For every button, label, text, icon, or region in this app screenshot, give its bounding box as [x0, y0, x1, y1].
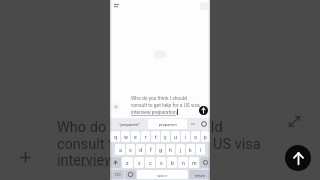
- staticText: “preparent”: [119, 122, 140, 127]
- button[interactable]: l: [196, 144, 205, 155]
- staticText: r: [145, 134, 147, 140]
- staticText: return: [195, 173, 205, 177]
- staticText: u: [174, 134, 177, 140]
- staticText: w: [124, 134, 128, 140]
- staticText: d: [139, 147, 142, 153]
- staticText: t: [155, 134, 157, 140]
- staticText: b: [171, 160, 174, 166]
- button[interactable]: Settings: [198, 118, 210, 130]
- staticText: Who do you think I should consult to get…: [57, 119, 261, 168]
- staticText: m: [192, 160, 197, 166]
- staticText: f: [150, 147, 152, 153]
- button[interactable]: j: [176, 144, 185, 155]
- button[interactable]: z: [122, 157, 133, 168]
- button[interactable]: f: [146, 144, 155, 155]
- staticText: k: [189, 147, 192, 153]
- button[interactable]: Shift: [110, 157, 121, 168]
- button[interactable]: n: [178, 157, 188, 168]
- button[interactable]: Add: [16, 148, 34, 166]
- staticText: e: [134, 134, 137, 140]
- staticText: v: [160, 160, 163, 166]
- button[interactable]: Backspace: [200, 157, 210, 168]
- button[interactable]: p: [201, 131, 210, 142]
- button[interactable]: 123: [110, 170, 124, 179]
- button[interactable]: Send message: [199, 106, 208, 115]
- staticText: i: [185, 134, 187, 140]
- staticText: s: [129, 147, 132, 153]
- button[interactable]: b: [167, 157, 177, 168]
- staticText: j: [180, 147, 182, 153]
- button[interactable]: i: [181, 131, 190, 142]
- staticText: a: [119, 147, 122, 153]
- button[interactable]: g: [156, 144, 165, 155]
- button[interactable]: Scroll to top: [285, 145, 311, 171]
- button[interactable]: en: [187, 118, 198, 130]
- button[interactable]: return: [189, 170, 210, 179]
- staticText: h: [169, 147, 172, 153]
- button[interactable]: o: [191, 131, 200, 142]
- button[interactable]: Menu: [112, 1, 121, 10]
- button[interactable]: e: [131, 131, 140, 142]
- staticText: p: [204, 134, 207, 140]
- button[interactable]: q: [110, 131, 120, 142]
- button[interactable]: Expand: [286, 113, 302, 129]
- button[interactable]: m: [189, 157, 199, 168]
- staticText: x: [138, 160, 141, 166]
- staticText: c: [149, 160, 152, 166]
- staticText: en: [191, 122, 195, 126]
- button[interactable]: y: [161, 131, 170, 142]
- button[interactable]: Space: [137, 170, 188, 179]
- staticText: o: [194, 134, 197, 140]
- staticText: 123: [114, 172, 121, 177]
- button[interactable]: t: [151, 131, 160, 142]
- button[interactable]: preparem: [148, 119, 187, 129]
- button[interactable]: Emoji: [125, 170, 136, 179]
- staticText: z: [126, 160, 129, 166]
- button[interactable]: h: [166, 144, 175, 155]
- staticText: g: [159, 147, 162, 153]
- button[interactable]: a: [115, 144, 125, 155]
- button[interactable]: r: [141, 131, 150, 142]
- staticText: l: [200, 147, 202, 153]
- staticText: space: [157, 173, 168, 177]
- staticText: preparem: [159, 122, 177, 127]
- staticText: q: [114, 134, 117, 140]
- button[interactable]: k: [186, 144, 195, 155]
- button[interactable]: w: [121, 131, 130, 142]
- staticText: Who do you think I should consult to get…: [131, 95, 200, 115]
- staticText: n: [182, 160, 185, 166]
- button[interactable]: v: [156, 157, 166, 168]
- button[interactable]: x: [134, 157, 144, 168]
- button[interactable]: d: [136, 144, 145, 155]
- button[interactable]: “preparent”: [110, 118, 148, 130]
- button[interactable]: s: [126, 144, 135, 155]
- button[interactable]: Attach: [111, 102, 121, 112]
- button[interactable]: u: [171, 131, 180, 142]
- staticText: y: [164, 134, 167, 140]
- button[interactable]: c: [145, 157, 155, 168]
